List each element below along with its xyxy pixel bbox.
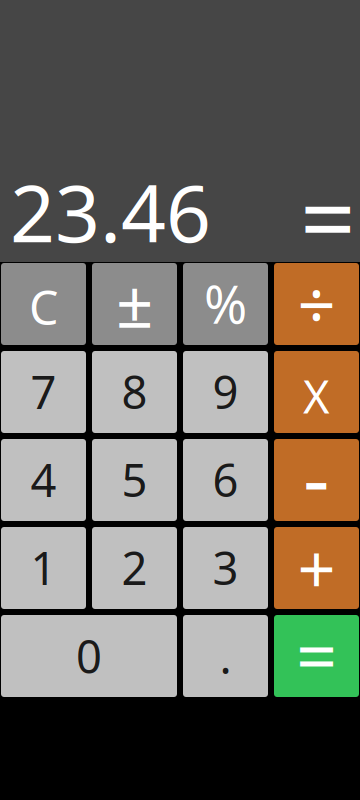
button[interactable]: 0 (1, 615, 177, 697)
staticText: . (219, 626, 231, 687)
staticText: ÷ (297, 259, 335, 348)
staticText: 2 (121, 537, 147, 598)
staticText: 7 (30, 361, 56, 422)
button[interactable]: 6 (183, 439, 268, 521)
button[interactable]: 2 (92, 527, 177, 609)
staticText: - (303, 422, 330, 531)
staticText: 0 (76, 626, 102, 686)
staticText: 8 (121, 361, 147, 422)
button[interactable]: Plus (274, 527, 359, 609)
button[interactable]: 8 (92, 351, 177, 433)
staticText: 6 (212, 449, 238, 510)
button[interactable]: 5 (92, 439, 177, 521)
button[interactable]: 9 (183, 351, 268, 433)
button[interactable]: Minus (274, 439, 359, 521)
button[interactable]: Clear (1, 263, 86, 345)
button[interactable]: Equals (274, 615, 359, 697)
staticText: 3 (212, 537, 238, 598)
staticText: = (296, 607, 337, 702)
button[interactable]: 4 (1, 439, 86, 521)
button[interactable]: Plus minus (92, 263, 177, 345)
staticText: % (204, 269, 247, 338)
staticText: 1 (30, 537, 56, 598)
staticText: 9 (212, 361, 238, 422)
button[interactable]: Divide (274, 263, 359, 345)
staticText: 23.46 (10, 159, 211, 264)
staticText: + (297, 524, 335, 613)
staticText: X (303, 366, 330, 426)
staticText: 5 (121, 449, 147, 510)
button[interactable]: Percent (183, 263, 268, 345)
button[interactable]: 7 (1, 351, 86, 433)
staticText: ± (116, 259, 153, 346)
button[interactable]: 1 (1, 527, 86, 609)
button[interactable]: Multiply (274, 351, 359, 433)
button[interactable]: 3 (183, 527, 268, 609)
staticText: C (29, 276, 58, 338)
staticText: 4 (30, 449, 56, 510)
button[interactable]: Decimal point (183, 615, 268, 697)
staticText: = (300, 151, 356, 281)
